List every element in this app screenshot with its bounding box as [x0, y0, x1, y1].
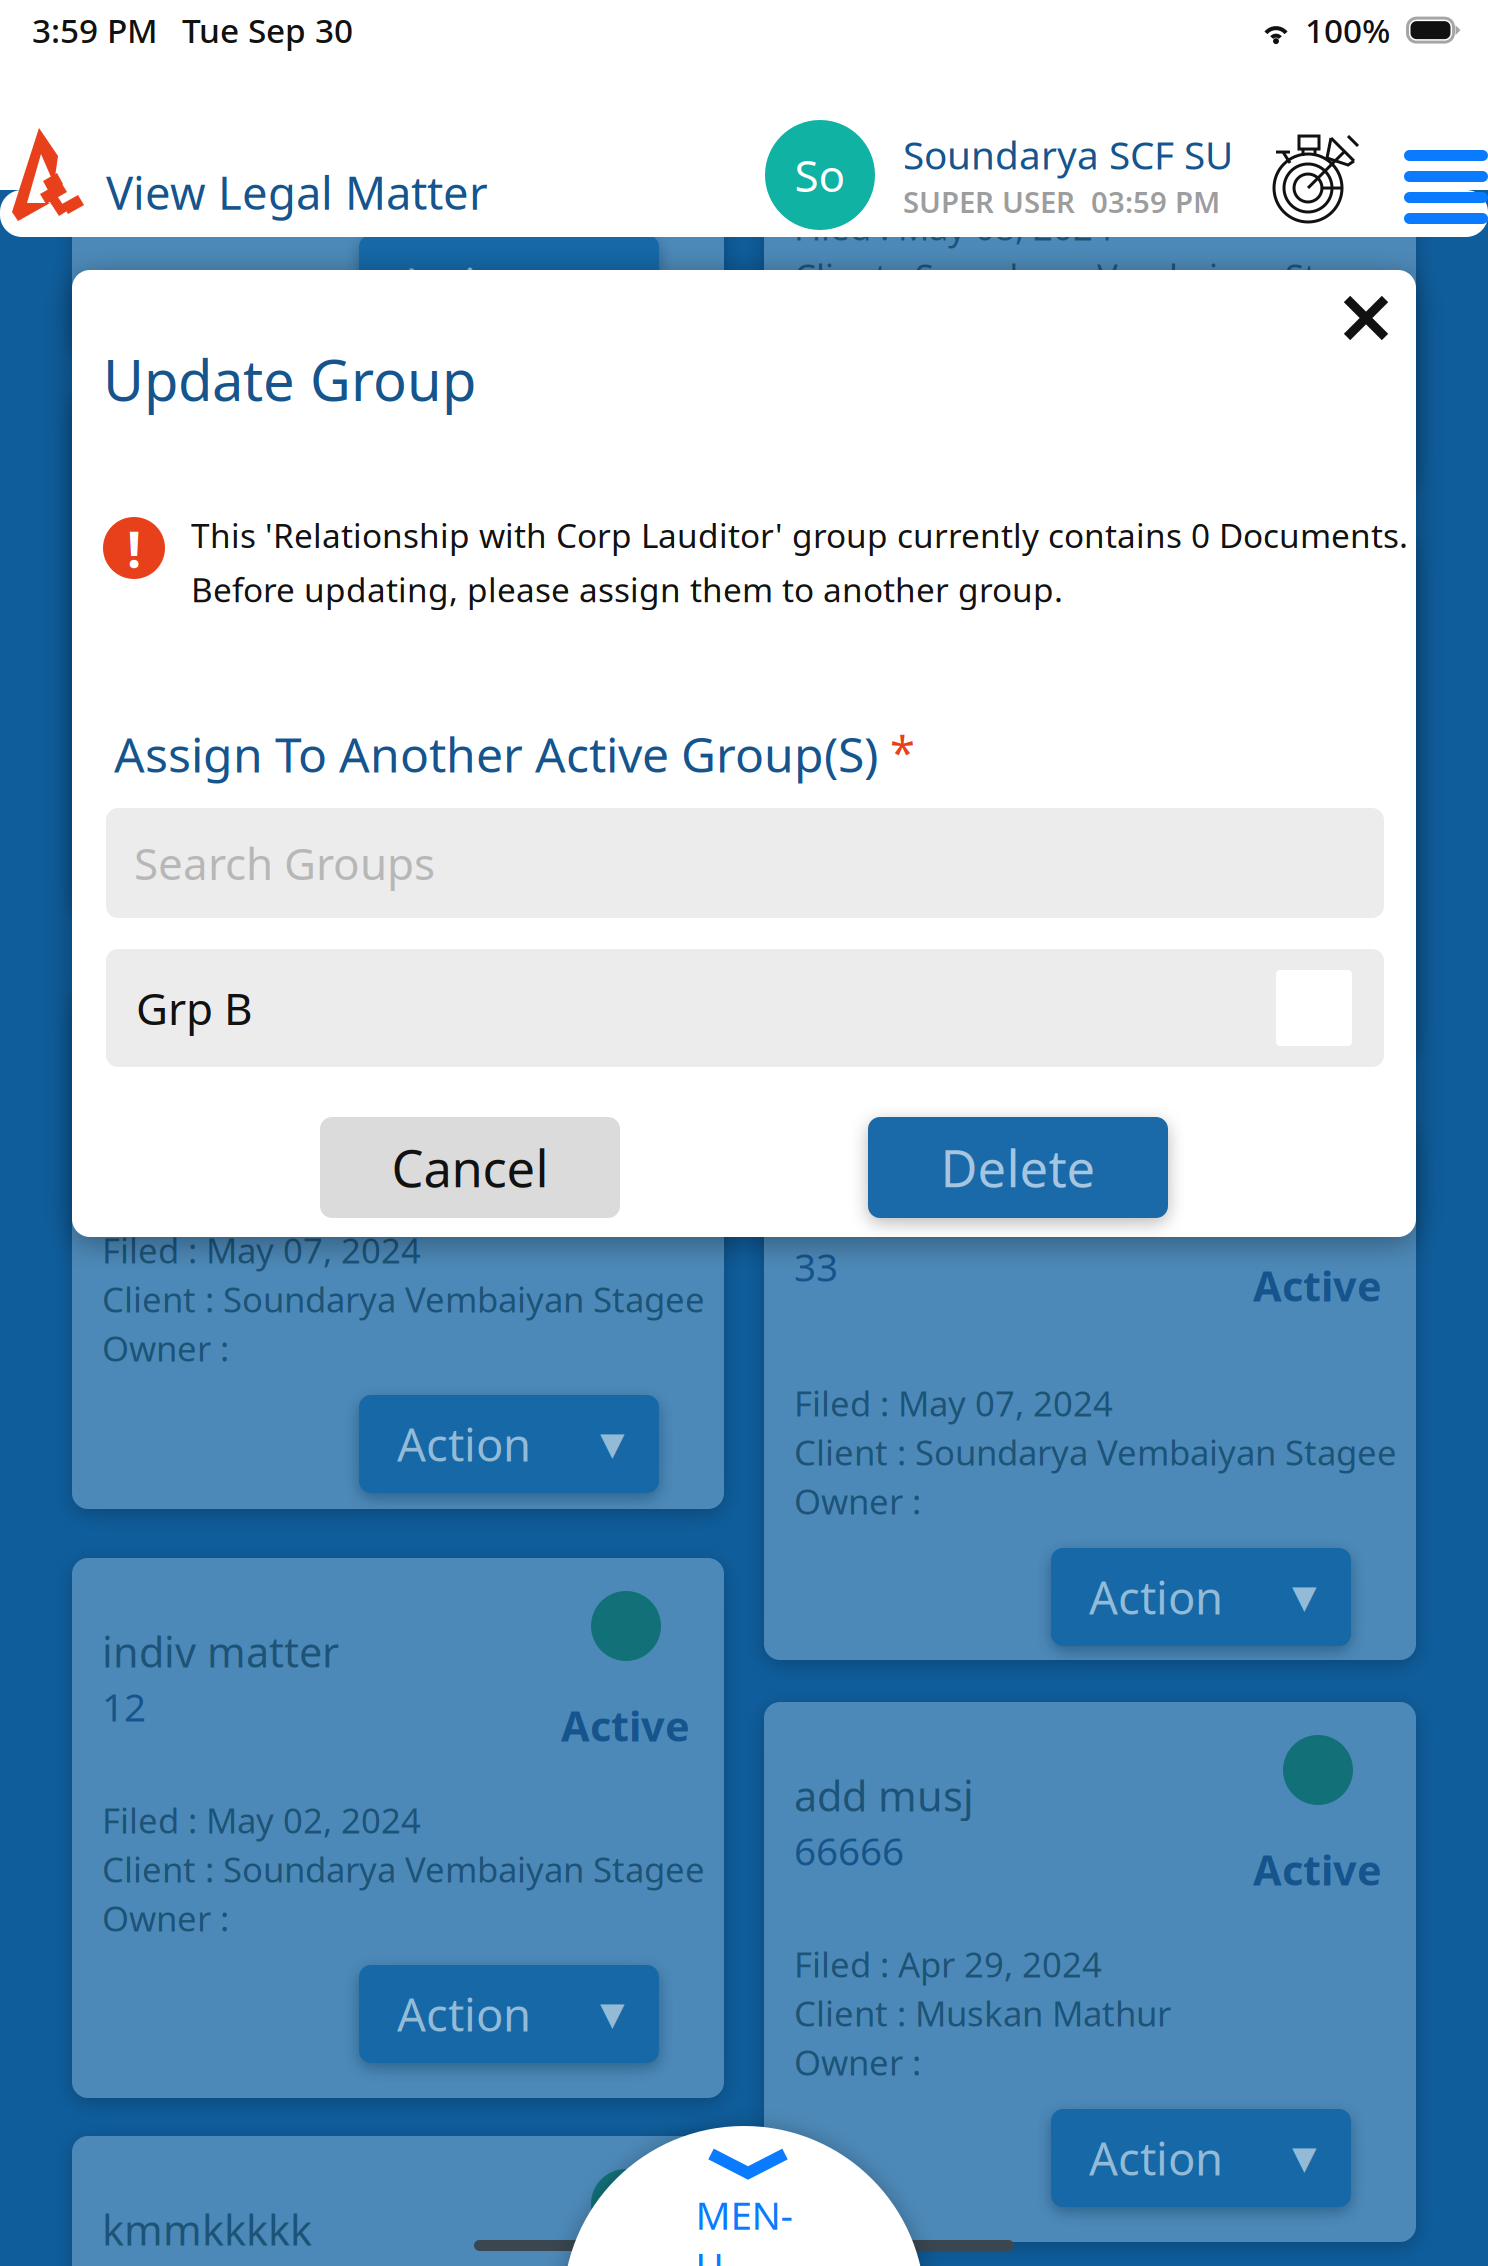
button[interactable]: Targets	[1272, 116, 1356, 226]
staticText: Active	[1253, 1258, 1382, 1313]
button[interactable]: So	[765, 120, 1233, 230]
staticText: SUPER USER 03:59 PM	[903, 182, 1220, 221]
staticText: Active	[561, 1698, 690, 1753]
staticText: Owner :	[102, 726, 229, 772]
staticText: Filed : Apr 29, 2024	[794, 1941, 1102, 1987]
staticText: Action	[397, 254, 531, 314]
staticText: Filed : May 08, 2024	[794, 204, 1113, 250]
button[interactable]: Menu	[563, 2126, 925, 2266]
staticText: Owner :	[102, 1895, 229, 1941]
staticText: Active	[1253, 105, 1382, 160]
staticText: Owner :	[102, 165, 229, 211]
staticText: Search Groups	[134, 834, 435, 892]
button[interactable]: Action	[359, 1965, 659, 2063]
staticText: Client : Muskan Mathur	[794, 1990, 1171, 2036]
staticText: Owner :	[102, 1325, 229, 1371]
staticText: 21	[794, 88, 838, 139]
staticText: Client : Soundarya Vembaiyan Stagee	[102, 1276, 705, 1322]
staticText: View Legal Matter	[106, 162, 488, 222]
staticText: Cancel	[391, 1134, 548, 1201]
staticText: Filed : May 07, 2024	[794, 1380, 1113, 1426]
staticText: Client : Soundarya Vembaiyan Stagee	[794, 1429, 1397, 1475]
staticText: kmmkkkkk	[102, 2202, 312, 2257]
staticText: ▼	[600, 1996, 625, 2032]
staticText: Filed : May 02, 2024	[102, 1797, 421, 1843]
button[interactable]: Action	[359, 1395, 659, 1493]
staticText: Delete	[940, 1134, 1095, 1201]
button[interactable]: Menu	[1404, 150, 1488, 224]
staticText: Owner :	[794, 2039, 921, 2085]
staticText: *	[890, 722, 915, 782]
staticText: ▼	[1292, 2140, 1317, 2176]
staticText: 100%	[1305, 8, 1390, 52]
button[interactable]: Action	[1051, 940, 1351, 1038]
staticText: Active	[561, 1128, 690, 1183]
staticText: Filed : May 07, 2024	[102, 1227, 421, 1273]
staticText: So	[794, 146, 845, 204]
staticText: 10	[102, 512, 146, 563]
staticText: matter b	[794, 599, 962, 654]
staticText: Action	[1089, 2128, 1223, 2188]
staticText: Owner :	[794, 1478, 921, 1524]
button[interactable]: Action	[1051, 2109, 1351, 2207]
button[interactable]: Delete	[868, 1117, 1168, 1218]
staticText: ▼	[600, 266, 625, 302]
staticText: Before updating, please assign them to a…	[191, 567, 1063, 612]
staticText: !	[127, 514, 141, 582]
staticText: Soundarya SCF SU	[903, 129, 1233, 180]
staticText: Action	[397, 1984, 531, 2044]
button[interactable]: Cancel	[320, 1117, 620, 1218]
staticText: Action	[397, 1414, 531, 1474]
staticText: Action	[1089, 1567, 1223, 1627]
staticText: 33	[794, 1241, 838, 1292]
staticText: ▼	[1292, 1579, 1317, 1615]
staticText: matter three	[102, 1054, 348, 1109]
staticText: Tue Sep 30	[182, 8, 353, 52]
staticText: Filed : May 07, 2024	[794, 772, 1113, 818]
button[interactable]: Close	[1324, 276, 1408, 360]
button[interactable]: Action	[359, 796, 659, 894]
button[interactable]: Action	[1051, 1548, 1351, 1646]
staticText: 66666	[794, 1825, 904, 1876]
staticText: Grp B	[136, 979, 253, 1037]
button[interactable]: Grp B	[106, 949, 1384, 1067]
staticText: Active	[561, 529, 690, 584]
staticText: add musj	[794, 1768, 974, 1823]
staticText: Client : Soundarya Vembaiyan Stagee	[794, 253, 1397, 299]
staticText: Active	[1253, 1842, 1382, 1897]
staticText: indiv matter	[102, 1624, 339, 1679]
staticText: MENU	[695, 2189, 792, 2266]
button[interactable]: Action	[359, 235, 659, 333]
staticText: This 'Relationship with Corp Lauditor' g…	[191, 513, 1408, 557]
staticText: matter c	[794, 1184, 957, 1239]
staticText: Assign To Another Active Group(S)	[114, 722, 878, 786]
staticText: Action	[397, 815, 531, 875]
staticText: ▼	[600, 1426, 625, 1462]
staticText: 12	[102, 1681, 146, 1732]
staticText: Update Group	[103, 342, 476, 416]
staticText: 3:59 PM	[32, 8, 158, 52]
staticText: Client : Soundarya Vembaiyan Stagee	[102, 1846, 705, 1892]
